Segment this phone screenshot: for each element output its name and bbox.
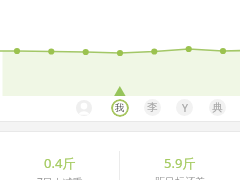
button[interactable]: 我 — [111, 99, 129, 117]
staticText: Y — [182, 101, 188, 115]
button[interactable]: 5.9斤 — [120, 154, 240, 174]
staticText: 0.4斤 — [44, 154, 76, 172]
staticText: 距目标还差 — [155, 175, 205, 180]
button[interactable] — [76, 100, 92, 116]
button[interactable]: 0.4斤 — [0, 154, 120, 174]
staticText: 5.9斤 — [164, 154, 196, 172]
staticText: 7日内减重 — [37, 175, 83, 180]
staticText: 李 — [147, 101, 158, 114]
staticText: 我 — [115, 102, 125, 114]
button[interactable]: Y — [176, 99, 193, 116]
staticText: 典 — [212, 101, 223, 114]
button[interactable]: 典 — [209, 99, 226, 116]
button[interactable]: 李 — [144, 99, 161, 116]
